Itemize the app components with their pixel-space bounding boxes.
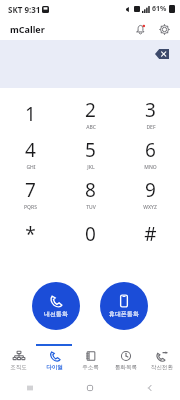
staticText: 0 [85, 221, 96, 247]
button[interactable]: 2 [60, 94, 120, 134]
button[interactable]: 조직도 [0, 344, 36, 376]
staticText: mCaller [10, 23, 45, 35]
staticText: 5 [85, 137, 96, 163]
staticText: 61% [152, 4, 167, 14]
staticText: 8 [85, 177, 96, 203]
staticText: PQRS [24, 204, 37, 211]
button[interactable]: 6 [120, 134, 180, 174]
staticText: DEF [146, 124, 156, 131]
staticText: 내선통화 [44, 310, 68, 318]
staticText: ABC [86, 124, 96, 131]
staticText: 통화목록 [115, 364, 137, 371]
button[interactable]: 9 [120, 174, 180, 214]
button[interactable]: Settings [156, 21, 172, 37]
button[interactable]: 다이얼 [36, 344, 72, 376]
button[interactable]: 7 [0, 174, 60, 214]
button[interactable]: 5 [60, 134, 120, 174]
staticText: 조직도 [10, 364, 27, 371]
staticText: TUV [86, 204, 96, 211]
staticText: SKT 9:31 [8, 4, 41, 15]
button[interactable]: 주소록 [72, 344, 108, 376]
button[interactable]: Mobile call [100, 282, 148, 330]
button[interactable]: 작신전환 [144, 344, 180, 376]
staticText: 6 [145, 137, 156, 163]
staticText: 3 [145, 97, 156, 123]
staticText: 주소록 [82, 364, 99, 371]
button[interactable]: 4 [0, 134, 60, 174]
button[interactable]: Home [60, 376, 120, 400]
staticText: GHI [26, 164, 36, 171]
staticText: 다이얼 [46, 364, 63, 371]
button[interactable]: Notifications [132, 21, 148, 37]
button[interactable]: Backspace [152, 44, 172, 64]
staticText: JKL [87, 164, 95, 171]
button[interactable]: 1 [0, 94, 60, 134]
button[interactable]: 통화목록 [108, 344, 144, 376]
staticText: MNO [144, 164, 157, 171]
button[interactable]: # [120, 214, 180, 254]
staticText: 4 [25, 137, 36, 163]
button[interactable]: 3 [120, 94, 180, 134]
staticText: 작신전환 [151, 364, 173, 371]
staticText: * [25, 221, 36, 247]
staticText: 2 [85, 97, 96, 123]
button[interactable]: Extension call [32, 282, 80, 330]
button[interactable]: Recents [0, 376, 60, 400]
staticText: # [144, 221, 157, 247]
staticText: WXYZ [143, 204, 157, 211]
staticText: 9 [145, 177, 156, 203]
button[interactable]: Back [120, 376, 180, 400]
button[interactable]: * [0, 214, 60, 254]
staticText: 7 [25, 177, 36, 203]
staticText: 1 [25, 101, 36, 127]
staticText: 휴대폰통화 [109, 310, 139, 318]
button[interactable]: 0 [60, 214, 120, 254]
button[interactable]: 8 [60, 174, 120, 214]
